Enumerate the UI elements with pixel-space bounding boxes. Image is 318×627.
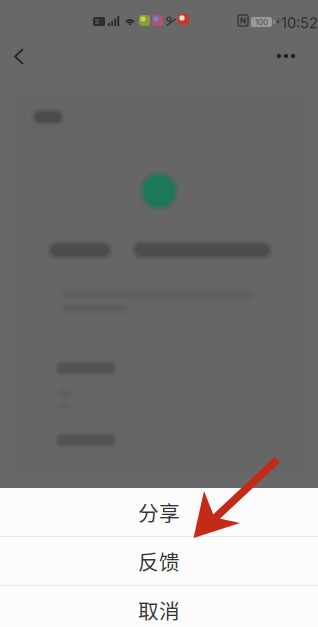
button[interactable]: More options — [264, 40, 308, 72]
button[interactable]: 反馈 — [0, 537, 318, 585]
button[interactable]: 分享 — [0, 488, 318, 536]
staticText: 取消 — [138, 595, 180, 625]
staticText: 100 — [255, 17, 268, 27]
staticText: 10:52 — [281, 14, 318, 32]
button[interactable]: Back — [0, 41, 38, 72]
staticText: 反馈 — [138, 546, 180, 576]
staticText: 分享 — [138, 497, 180, 527]
button[interactable]: 取消 — [0, 586, 318, 627]
